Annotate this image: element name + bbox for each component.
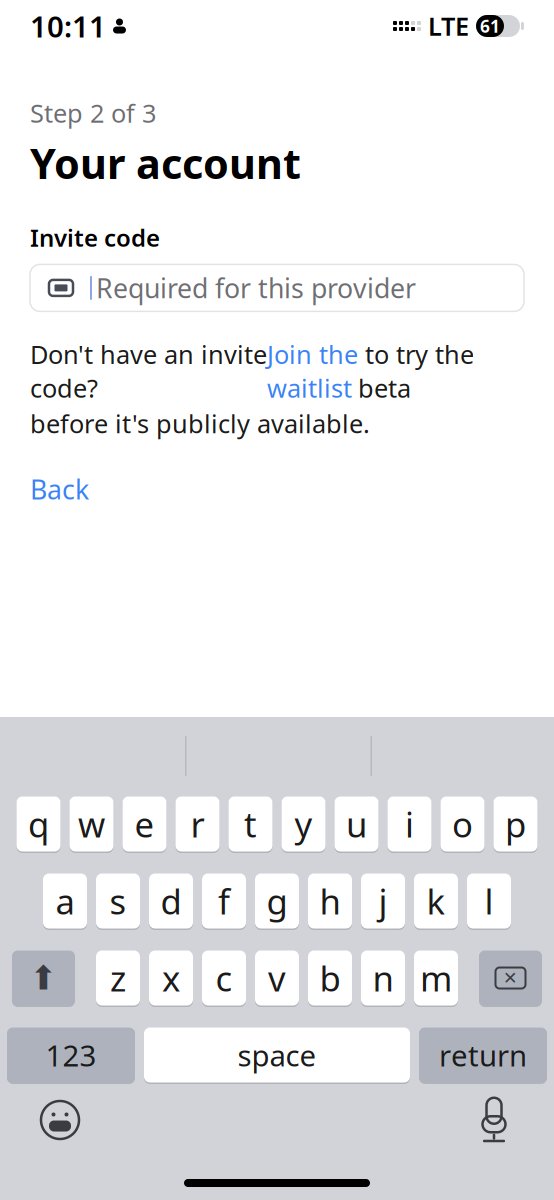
staticText: 61 — [480, 14, 500, 37]
staticText: u — [346, 801, 367, 847]
staticText: Don't have an invite code? — [30, 337, 267, 405]
staticText: k — [426, 878, 445, 924]
button[interactable]: v — [255, 949, 299, 1007]
button[interactable]: Required for this provider — [30, 264, 524, 311]
staticText: 123 — [45, 1035, 96, 1074]
staticText: y — [294, 801, 312, 847]
button[interactable]: Back — [30, 471, 89, 507]
button[interactable]: c — [202, 949, 246, 1007]
staticText: Step 2 of 3 — [30, 96, 156, 130]
staticText: t — [244, 801, 257, 847]
staticText: i — [405, 801, 414, 847]
button[interactable]: space — [144, 1026, 410, 1084]
staticText: before it's publicly available. — [30, 407, 370, 440]
button[interactable]: return — [419, 1026, 547, 1084]
button[interactable]: x — [149, 949, 193, 1007]
staticText: Invite code — [30, 221, 160, 253]
staticText: w — [78, 801, 105, 847]
staticText: b — [319, 955, 340, 1001]
button[interactable]: Dictate — [470, 1096, 518, 1144]
staticText: e — [134, 801, 154, 847]
button[interactable]: z — [96, 949, 140, 1007]
staticText: ✕ — [503, 968, 518, 988]
staticText: f — [218, 878, 230, 924]
staticText: Your account — [30, 136, 301, 190]
button[interactable]: p — [493, 795, 537, 853]
button[interactable]: w — [69, 795, 113, 853]
staticText: a — [55, 878, 74, 924]
button[interactable]: l — [467, 872, 511, 930]
staticText: n — [372, 955, 393, 1001]
button[interactable]: q — [16, 795, 60, 853]
button[interactable]: y — [281, 795, 325, 853]
button[interactable]: t — [228, 795, 272, 853]
staticText: Required for this provider — [96, 270, 416, 306]
button[interactable]: d — [149, 872, 193, 930]
staticText: j — [378, 878, 387, 924]
staticText: h — [319, 878, 340, 924]
staticText: s — [109, 878, 126, 924]
button[interactable]: o — [440, 795, 484, 853]
staticText: d — [160, 878, 181, 924]
button[interactable]: Emoji keyboard — [36, 1096, 84, 1144]
button[interactable]: s — [96, 872, 140, 930]
staticText: return — [439, 1035, 527, 1074]
staticText: o — [452, 801, 473, 847]
staticText: m — [420, 955, 452, 1001]
button[interactable]: Delete — [479, 949, 542, 1007]
button[interactable]: h — [308, 872, 352, 930]
button[interactable]: i — [387, 795, 431, 853]
staticText: to try the beta — [358, 337, 474, 405]
button[interactable]: 123 — [7, 1026, 135, 1084]
staticText: x — [162, 955, 180, 1001]
button[interactable]: u — [334, 795, 378, 853]
staticText: Join the waitlist — [267, 337, 358, 405]
staticText: LTE — [428, 9, 469, 43]
button[interactable]: j — [361, 872, 405, 930]
button[interactable]: f — [202, 872, 246, 930]
button[interactable]: b — [308, 949, 352, 1007]
staticText: 10:11 — [30, 6, 106, 45]
staticText: c — [215, 955, 232, 1001]
staticText: z — [110, 955, 126, 1001]
button[interactable]: g — [255, 872, 299, 930]
button[interactable]: Shift — [12, 949, 75, 1007]
staticText: l — [484, 878, 493, 924]
button[interactable]: m — [414, 949, 458, 1007]
staticText: v — [268, 955, 286, 1001]
staticText: r — [190, 801, 204, 847]
staticText: q — [28, 801, 49, 847]
button[interactable]: Join the waitlist — [267, 337, 358, 405]
staticText: g — [266, 878, 287, 924]
staticText: Back — [30, 471, 89, 507]
button[interactable]: r — [175, 795, 219, 853]
button[interactable]: n — [361, 949, 405, 1007]
button[interactable]: e — [122, 795, 166, 853]
button[interactable]: a — [43, 872, 87, 930]
staticText: space — [237, 1035, 316, 1074]
staticText: p — [505, 801, 526, 847]
button[interactable]: k — [414, 872, 458, 930]
staticText: ⬆ — [29, 959, 57, 997]
